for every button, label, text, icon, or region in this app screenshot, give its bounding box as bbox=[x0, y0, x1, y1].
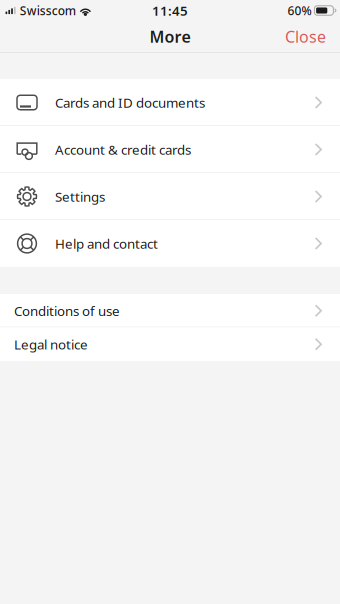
staticText: Close bbox=[285, 26, 326, 47]
staticText: More bbox=[149, 26, 190, 47]
button[interactable]: Cards and ID documents bbox=[0, 79, 340, 126]
staticText: 60% bbox=[287, 2, 311, 18]
staticText: 11:45 bbox=[152, 2, 188, 19]
button[interactable]: Conditions of use bbox=[0, 294, 340, 327]
button[interactable]: Legal notice bbox=[0, 327, 340, 361]
staticText: Account & credit cards bbox=[55, 141, 191, 158]
button[interactable]: Account & credit cards bbox=[0, 126, 340, 173]
staticText: Cards and ID documents bbox=[55, 94, 205, 111]
staticText: Swisscom bbox=[20, 2, 76, 18]
staticText: Settings bbox=[55, 188, 105, 205]
staticText: Conditions of use bbox=[14, 302, 120, 320]
button[interactable]: Help and contact bbox=[0, 220, 340, 267]
button[interactable]: Close bbox=[271, 19, 340, 54]
button[interactable]: Settings bbox=[0, 173, 340, 220]
staticText: Help and contact bbox=[55, 235, 158, 252]
staticText: Legal notice bbox=[14, 335, 88, 353]
